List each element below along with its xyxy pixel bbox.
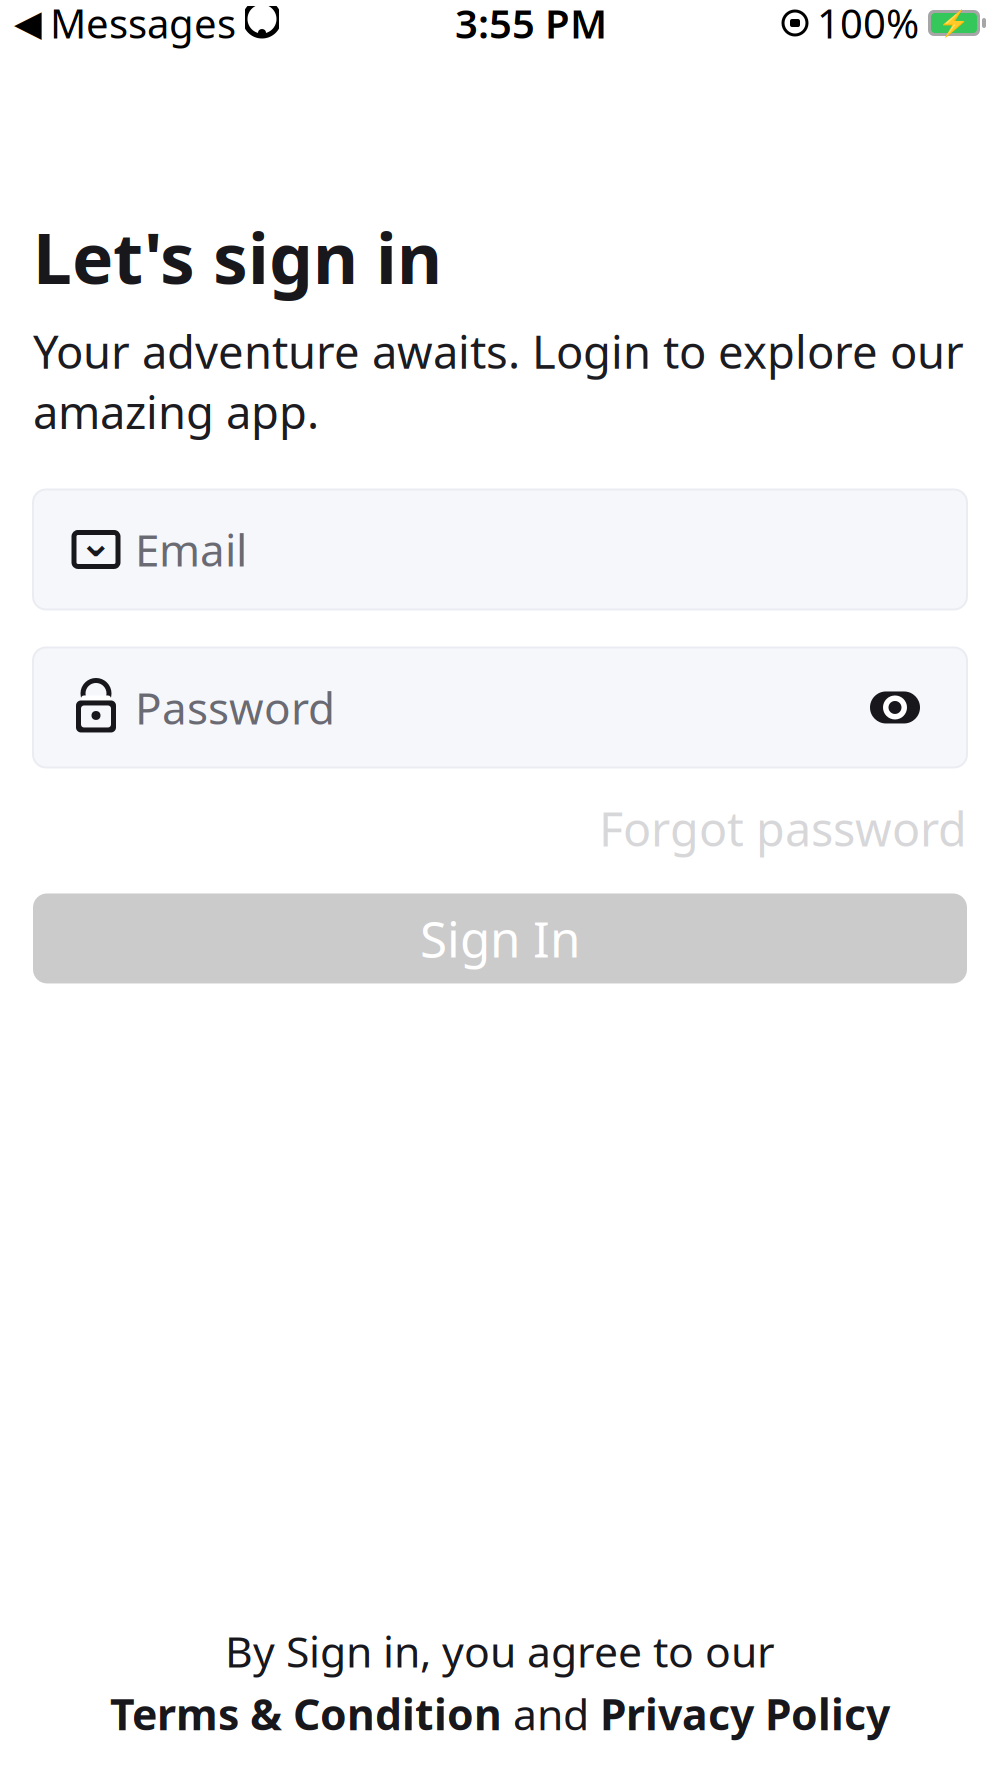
staticText: and xyxy=(502,1685,600,1742)
button[interactable]: ⌄ xyxy=(33,489,967,609)
staticText: Your adventure awaits. Login to explore … xyxy=(33,321,964,441)
staticText: Sign In xyxy=(420,906,580,971)
button[interactable]: Password xyxy=(33,647,967,767)
staticText: Privacy Policy xyxy=(600,1685,890,1742)
button[interactable]: Show password xyxy=(859,679,931,735)
button[interactable]: Forgot password xyxy=(599,789,967,867)
staticText: ⌄ xyxy=(79,520,113,565)
staticText: By Sign in, you agree to our xyxy=(225,1623,775,1679)
staticText: 3:55 PM xyxy=(455,0,607,49)
staticText: Email xyxy=(135,520,247,579)
button[interactable]: Privacy Policy xyxy=(600,1685,890,1742)
staticText: Password xyxy=(135,678,335,737)
staticText: 100% xyxy=(817,0,919,49)
staticText: Messages xyxy=(50,0,236,49)
staticText: ◀ xyxy=(14,3,42,43)
staticText: Let's sign in xyxy=(33,211,442,303)
staticText: Terms & Condition xyxy=(110,1685,502,1742)
staticText: ⚡ xyxy=(938,8,970,37)
button[interactable]: Terms & Condition xyxy=(110,1685,502,1742)
staticText: Forgot password xyxy=(599,797,967,859)
button[interactable]: Sign In xyxy=(33,893,967,983)
